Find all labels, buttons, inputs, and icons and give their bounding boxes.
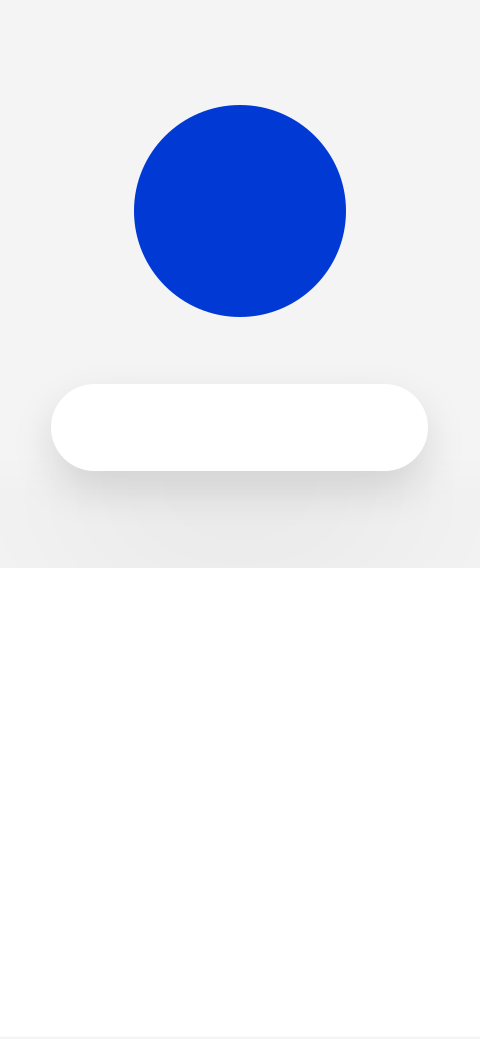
button[interactable]: Continue (51, 384, 428, 471)
